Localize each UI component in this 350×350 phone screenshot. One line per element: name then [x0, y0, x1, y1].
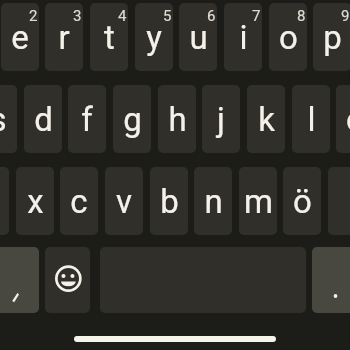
staticText: ö [346, 100, 350, 139]
staticText: n [204, 182, 223, 221]
staticText: k [258, 100, 275, 139]
button[interactable]: i [224, 3, 262, 71]
button[interactable]: h [158, 85, 196, 153]
button[interactable]: y [135, 3, 173, 71]
button[interactable]: Emoji [45, 247, 90, 313]
staticText: i [239, 18, 248, 57]
button[interactable]: n [194, 167, 232, 235]
staticText: s [0, 100, 7, 139]
staticText: 2 [29, 7, 38, 25]
staticText: x [27, 182, 44, 221]
staticText: h [168, 100, 187, 139]
staticText: b [160, 182, 179, 221]
staticText: e [11, 18, 29, 57]
staticText: 4 [118, 7, 127, 25]
staticText: y [146, 18, 162, 57]
staticText: m [244, 182, 273, 221]
button[interactable]: u [179, 3, 217, 71]
staticText: c [70, 182, 88, 221]
staticText: f [81, 100, 93, 139]
staticText: ö [293, 182, 312, 221]
button[interactable]: k [247, 85, 285, 153]
button[interactable]: ö [283, 167, 321, 235]
button[interactable]: b [150, 167, 188, 235]
staticText: j [217, 100, 225, 139]
staticText: 7 [252, 7, 261, 25]
button[interactable]: s [0, 85, 17, 153]
staticText: p [323, 18, 342, 57]
button[interactable]: l [292, 85, 330, 153]
button[interactable]: g [113, 85, 151, 153]
button[interactable]: ö [336, 85, 350, 153]
button[interactable]: j [202, 85, 240, 153]
staticText: r [58, 18, 70, 57]
staticText: d [34, 100, 53, 139]
staticText: 9 [341, 7, 350, 25]
button[interactable]: f [68, 85, 106, 153]
button[interactable]: Period [312, 247, 350, 313]
button[interactable]: Comma [0, 247, 39, 313]
staticText: g [123, 100, 142, 139]
staticText: 8 [297, 7, 306, 25]
staticText: o [279, 18, 298, 57]
button[interactable]: p [313, 3, 350, 71]
button[interactable]: r [45, 3, 83, 71]
staticText: t [104, 18, 115, 57]
staticText: 3 [73, 7, 82, 25]
staticText: 5 [163, 7, 172, 25]
staticText: l [307, 100, 316, 139]
staticText: 6 [207, 7, 216, 25]
button[interactable]: v [105, 167, 143, 235]
button[interactable]: d [24, 85, 62, 153]
staticText: u [189, 18, 208, 57]
button[interactable]: x [16, 167, 54, 235]
button[interactable]: e [1, 3, 39, 71]
button[interactable]: m [239, 167, 277, 235]
staticText: v [116, 182, 132, 221]
button[interactable]: c [60, 167, 98, 235]
button[interactable]: o [269, 3, 307, 71]
button[interactable]: t [90, 3, 128, 71]
